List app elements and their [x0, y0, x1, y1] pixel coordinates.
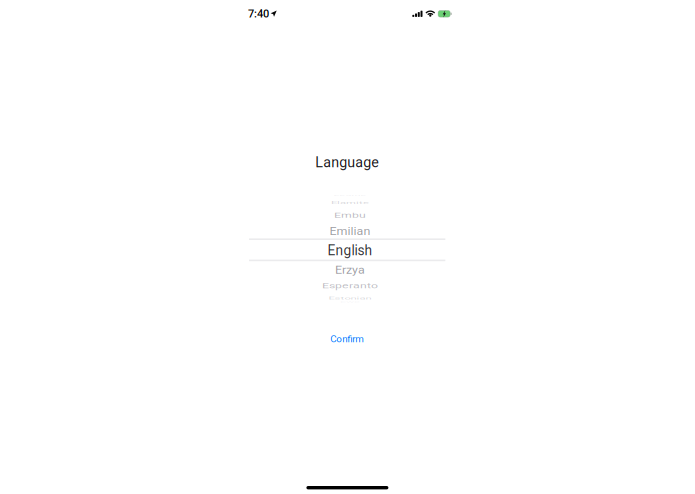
staticText: Erzya — [335, 263, 365, 277]
staticText: Esperanto — [322, 278, 378, 293]
staticText: Embu — [334, 208, 366, 222]
staticText: Ewe — [340, 295, 360, 308]
staticText: English — [327, 242, 372, 259]
staticText: Language — [315, 154, 379, 171]
staticText: Elamite — [331, 196, 369, 209]
button[interactable]: Confirm — [310, 330, 384, 347]
staticText: Estonian — [328, 292, 371, 305]
staticText: Emilian — [329, 224, 370, 239]
staticText: Confirm — [330, 333, 364, 345]
staticText: 7:40 — [248, 7, 269, 20]
